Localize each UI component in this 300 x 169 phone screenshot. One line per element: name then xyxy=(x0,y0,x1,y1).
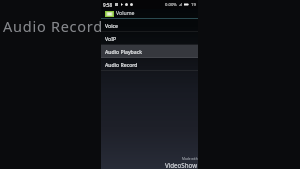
staticText: 9:58 xyxy=(103,2,113,8)
staticText: 0.00% xyxy=(165,2,177,8)
button[interactable]: Volume app icon xyxy=(105,9,198,18)
staticText: Audio Record xyxy=(105,61,138,68)
staticText: Volume xyxy=(116,9,135,16)
staticText: VideoShow xyxy=(165,161,198,169)
other: Volume app icon xyxy=(105,11,114,17)
staticText: VoIP xyxy=(105,35,117,42)
button[interactable]: Voice xyxy=(101,19,198,32)
button[interactable]: Audio Record xyxy=(101,58,198,71)
staticText: 19 xyxy=(191,2,196,8)
staticText: Made with xyxy=(182,157,198,161)
button[interactable]: VoIP xyxy=(101,32,198,45)
staticText: Voice xyxy=(105,22,118,29)
button[interactable]: Audio Playback xyxy=(101,45,198,58)
staticText: Audio Record xyxy=(3,16,103,36)
staticText: Audio Playback xyxy=(105,48,142,55)
